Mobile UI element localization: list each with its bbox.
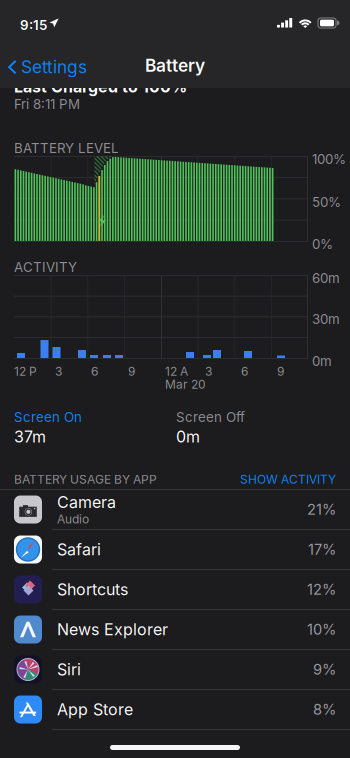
staticText: 12 P (14, 364, 37, 378)
button[interactable]: Camera (0, 490, 350, 530)
staticText: Screen On (14, 409, 82, 425)
staticText: 0m (176, 427, 200, 446)
button[interactable]: App Store (0, 690, 350, 730)
staticText: 17% (308, 541, 336, 558)
staticText: 50% (312, 194, 341, 210)
staticText: App Store (57, 700, 133, 719)
staticText: 9:15 (20, 17, 47, 33)
staticText: 30m (312, 311, 340, 327)
staticText: Shortcuts (57, 580, 128, 599)
staticText: 3 (55, 364, 62, 378)
staticText: Mar 20 (165, 377, 206, 391)
staticText: 6 (91, 364, 98, 378)
staticText: Settings (21, 56, 87, 77)
staticText: ACTIVITY (14, 259, 77, 275)
button[interactable]: Shortcuts (0, 570, 350, 610)
staticText: 12% (307, 581, 336, 598)
staticText: 9 (128, 364, 135, 378)
staticText: Screen Off (176, 409, 245, 425)
staticText: 8% (313, 701, 336, 718)
staticText: 10% (307, 621, 336, 638)
staticText: Fri 8:11 PM (14, 96, 80, 112)
staticText: Last Charged to 100% (14, 77, 187, 96)
staticText: 0m (312, 353, 332, 369)
button[interactable]: Safari (0, 530, 350, 570)
staticText: Siri (57, 660, 81, 679)
staticText: 100% (312, 151, 346, 167)
button[interactable]: SHOW ACTIVITY (240, 472, 336, 486)
staticText: BATTERY LEVEL (14, 140, 119, 156)
staticText: Audio (57, 512, 89, 526)
staticText: 3 (205, 364, 212, 378)
staticText: 6 (241, 364, 248, 378)
staticText: 21% (307, 501, 336, 518)
staticText: 12 A (165, 364, 188, 378)
button[interactable]: News Explorer (0, 610, 350, 650)
staticText: Camera (57, 493, 116, 512)
staticText: 60m (312, 270, 340, 286)
button[interactable]: Settings (8, 56, 87, 78)
staticText: BATTERY USAGE BY APP (14, 472, 157, 486)
button[interactable]: Siri (0, 650, 350, 690)
staticText: Battery (145, 55, 205, 76)
staticText: 9% (313, 661, 336, 678)
staticText: 9 (277, 364, 284, 378)
staticText: Safari (57, 540, 101, 559)
staticText: 37m (14, 427, 46, 446)
staticText: SHOW ACTIVITY (240, 472, 336, 486)
staticText: News Explorer (57, 620, 168, 639)
staticText: 0% (312, 236, 333, 252)
